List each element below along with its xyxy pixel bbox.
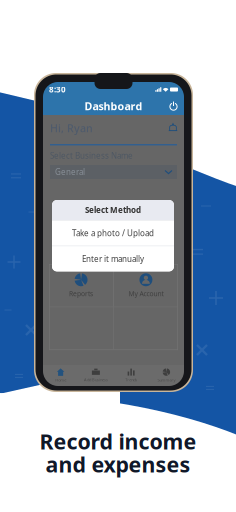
staticText: Home	[55, 377, 66, 383]
staticText: Reports	[69, 289, 93, 298]
button[interactable]: Notifications	[169, 124, 177, 133]
staticText: Record income	[39, 427, 196, 455]
staticText: Add Business	[84, 377, 108, 382]
staticText: General	[55, 167, 85, 177]
button[interactable]: Trends	[113, 369, 149, 382]
button[interactable]: Power	[167, 99, 180, 112]
staticText: Enter it manually	[82, 254, 144, 264]
button[interactable]: Take a photo / Upload	[52, 221, 174, 246]
staticText: Hi, Ryan	[50, 121, 93, 135]
staticText: 8:30	[49, 84, 66, 95]
button[interactable]: Summary	[149, 368, 184, 383]
button[interactable]: Enter it manually	[52, 246, 174, 271]
staticText: Take a photo / Upload	[72, 228, 154, 238]
staticText: Select Business Name	[50, 150, 133, 161]
staticText: and expenses	[45, 450, 190, 478]
staticText: Dashboard	[84, 99, 142, 113]
button[interactable]: My Account	[114, 265, 178, 307]
staticText: Summary	[157, 377, 175, 383]
staticText: Select Method	[85, 205, 141, 215]
button[interactable]: Reports	[49, 265, 113, 307]
staticText: Trends	[125, 377, 137, 382]
staticText: My Account	[128, 289, 163, 298]
button[interactable]: Add Business	[78, 369, 113, 382]
button[interactable]: Home	[43, 368, 78, 383]
